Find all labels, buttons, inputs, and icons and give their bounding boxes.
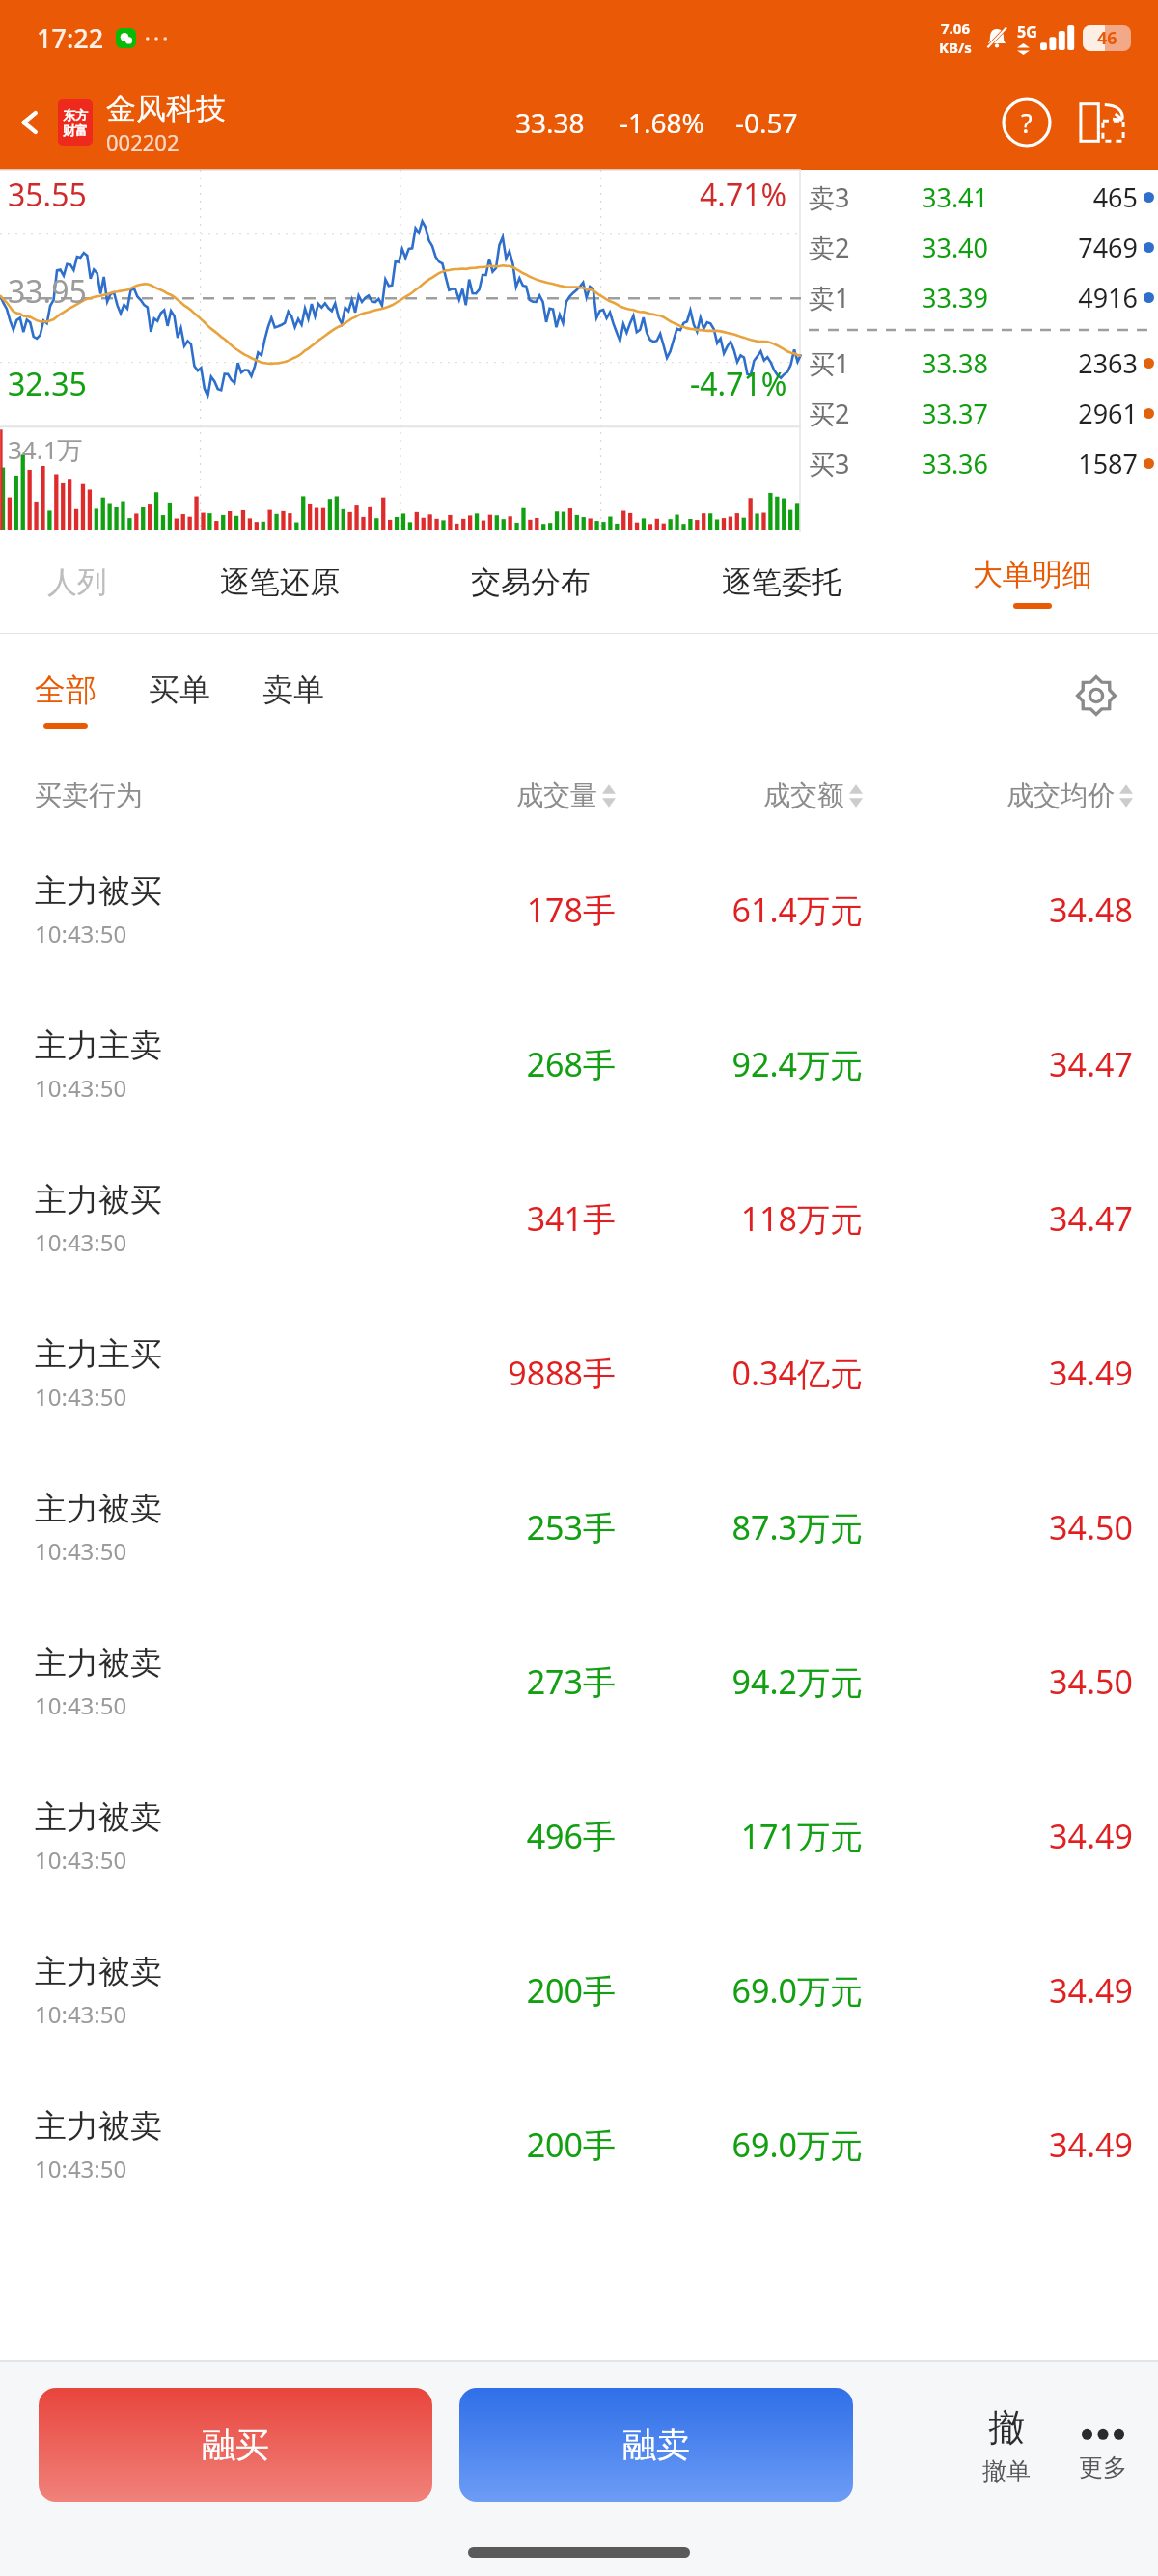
staticText: 撤 bbox=[988, 2404, 1025, 2451]
staticText: 10:43:50 bbox=[35, 918, 127, 949]
button[interactable]: 主力被卖 bbox=[0, 2068, 1158, 2222]
staticText: 10:43:50 bbox=[35, 1535, 127, 1567]
button[interactable]: 大单明细 bbox=[907, 532, 1158, 633]
staticText: 逐笔委托 bbox=[722, 563, 841, 601]
button[interactable]: 买1 bbox=[809, 338, 1158, 388]
staticText: 341手 bbox=[423, 1196, 616, 1241]
staticText: 465 bbox=[1041, 179, 1138, 215]
button[interactable]: 交易分布 bbox=[405, 532, 656, 633]
button[interactable]: 成交均价 bbox=[892, 779, 1133, 812]
button[interactable]: 全部 bbox=[35, 671, 96, 729]
staticText: 买1 bbox=[809, 345, 868, 381]
staticText: 69.0万元 bbox=[650, 1968, 863, 2013]
staticText: 全部 bbox=[35, 671, 96, 709]
button[interactable]: 成交量 bbox=[423, 779, 616, 812]
button[interactable]: 卖单 bbox=[262, 671, 324, 723]
staticText: 5G bbox=[1017, 21, 1037, 42]
staticText: 33.38 bbox=[515, 104, 585, 141]
staticText: 撤单 bbox=[982, 2456, 1031, 2486]
button[interactable]: 融卖 bbox=[459, 2388, 853, 2502]
staticText: 主力被卖 bbox=[35, 1489, 162, 1529]
staticText: 17:22 bbox=[37, 20, 104, 56]
staticText: 人列 bbox=[47, 563, 107, 601]
staticText: 买3 bbox=[809, 446, 868, 481]
staticText: 9888手 bbox=[423, 1351, 616, 1395]
staticText: -0.57 bbox=[735, 104, 798, 141]
button[interactable]: 主力被卖 bbox=[0, 1913, 1158, 2068]
button[interactable]: 逐笔还原 bbox=[154, 532, 405, 633]
staticText: 33.36 bbox=[868, 446, 1041, 481]
staticText: -4.71% bbox=[690, 363, 787, 405]
button[interactable]: 撤 bbox=[982, 2404, 1031, 2486]
staticText: 35.55 bbox=[8, 174, 87, 216]
staticText: 买2 bbox=[809, 396, 868, 431]
button[interactable]: 更多 bbox=[1079, 2408, 1127, 2482]
button[interactable]: 主力被卖 bbox=[0, 1759, 1158, 1913]
button[interactable]: Settings bbox=[1061, 661, 1131, 730]
staticText: 10:43:50 bbox=[35, 1072, 127, 1104]
staticText: 496手 bbox=[423, 1814, 616, 1858]
staticText: 32.35 bbox=[8, 363, 87, 405]
staticText: 卖2 bbox=[809, 230, 868, 265]
button[interactable]: 主力主卖 bbox=[0, 987, 1158, 1141]
staticText: 253手 bbox=[423, 1505, 616, 1549]
staticText: 4.71% bbox=[700, 174, 787, 216]
staticText: 69.0万元 bbox=[650, 2123, 863, 2167]
button[interactable]: Back bbox=[0, 75, 60, 170]
button[interactable]: 买3 bbox=[809, 438, 1158, 488]
staticText: 34.47 bbox=[892, 1042, 1133, 1086]
staticText: 33.39 bbox=[868, 280, 1041, 315]
staticText: 交易分布 bbox=[471, 563, 591, 601]
staticText: 33.38 bbox=[868, 345, 1041, 381]
staticText: 33.41 bbox=[868, 179, 1041, 215]
staticText: 34.47 bbox=[892, 1196, 1133, 1241]
staticText: 卖1 bbox=[809, 280, 868, 315]
button[interactable]: 主力被买 bbox=[0, 833, 1158, 987]
staticText: 财富 bbox=[63, 123, 88, 138]
button[interactable]: Landscape bbox=[1063, 84, 1141, 161]
staticText: 178手 bbox=[423, 888, 616, 932]
button[interactable]: 融买 bbox=[39, 2388, 432, 2502]
staticText: 1587 bbox=[1041, 446, 1138, 481]
staticText: 171万元 bbox=[650, 1814, 863, 1858]
button[interactable]: 买单 bbox=[149, 671, 210, 723]
staticText: 2961 bbox=[1041, 396, 1138, 431]
staticText: 买单 bbox=[149, 671, 210, 709]
button[interactable]: 主力被卖 bbox=[0, 1604, 1158, 1759]
button[interactable]: 卖1 bbox=[809, 272, 1158, 322]
staticText: 主力被卖 bbox=[35, 2106, 162, 2147]
button[interactable]: 主力被买 bbox=[0, 1141, 1158, 1296]
button[interactable]: 卖2 bbox=[809, 222, 1158, 272]
button[interactable]: 买2 bbox=[809, 388, 1158, 438]
button[interactable]: 主力主买 bbox=[0, 1296, 1158, 1450]
staticText: 34.50 bbox=[892, 1659, 1133, 1704]
staticText: 34.50 bbox=[892, 1505, 1133, 1549]
staticText: 34.49 bbox=[892, 1968, 1133, 2013]
staticText: 34.49 bbox=[892, 1814, 1133, 1858]
staticText: 268手 bbox=[423, 1042, 616, 1086]
staticText: 34.49 bbox=[892, 2123, 1133, 2167]
staticText: 33.37 bbox=[868, 396, 1041, 431]
staticText: 10:43:50 bbox=[35, 1381, 127, 1412]
staticText: ? bbox=[1021, 105, 1033, 141]
button[interactable]: 逐笔委托 bbox=[656, 532, 907, 633]
button[interactable]: 主力被卖 bbox=[0, 1450, 1158, 1604]
staticText: 主力主卖 bbox=[35, 1026, 162, 1066]
button[interactable]: 成交额 bbox=[650, 779, 863, 812]
staticText: 成交额 bbox=[763, 779, 844, 812]
staticText: 34.1万 bbox=[8, 432, 83, 467]
staticText: 金风科技 bbox=[106, 90, 226, 127]
staticText: 34.49 bbox=[892, 1351, 1133, 1395]
staticText: 买卖行为 bbox=[35, 779, 423, 812]
staticText: 273手 bbox=[423, 1659, 616, 1704]
staticText: 92.4万元 bbox=[650, 1042, 863, 1086]
staticText: 主力被买 bbox=[35, 871, 162, 912]
staticText: 主力被买 bbox=[35, 1180, 162, 1220]
staticText: 200手 bbox=[423, 1968, 616, 2013]
button[interactable]: Help bbox=[990, 86, 1063, 159]
button[interactable]: 人列 bbox=[0, 532, 154, 633]
staticText: KB/s bbox=[939, 38, 972, 57]
button[interactable]: 卖3 bbox=[809, 172, 1158, 222]
staticText: 10:43:50 bbox=[35, 1998, 127, 2030]
staticText: -1.68% bbox=[620, 104, 704, 141]
